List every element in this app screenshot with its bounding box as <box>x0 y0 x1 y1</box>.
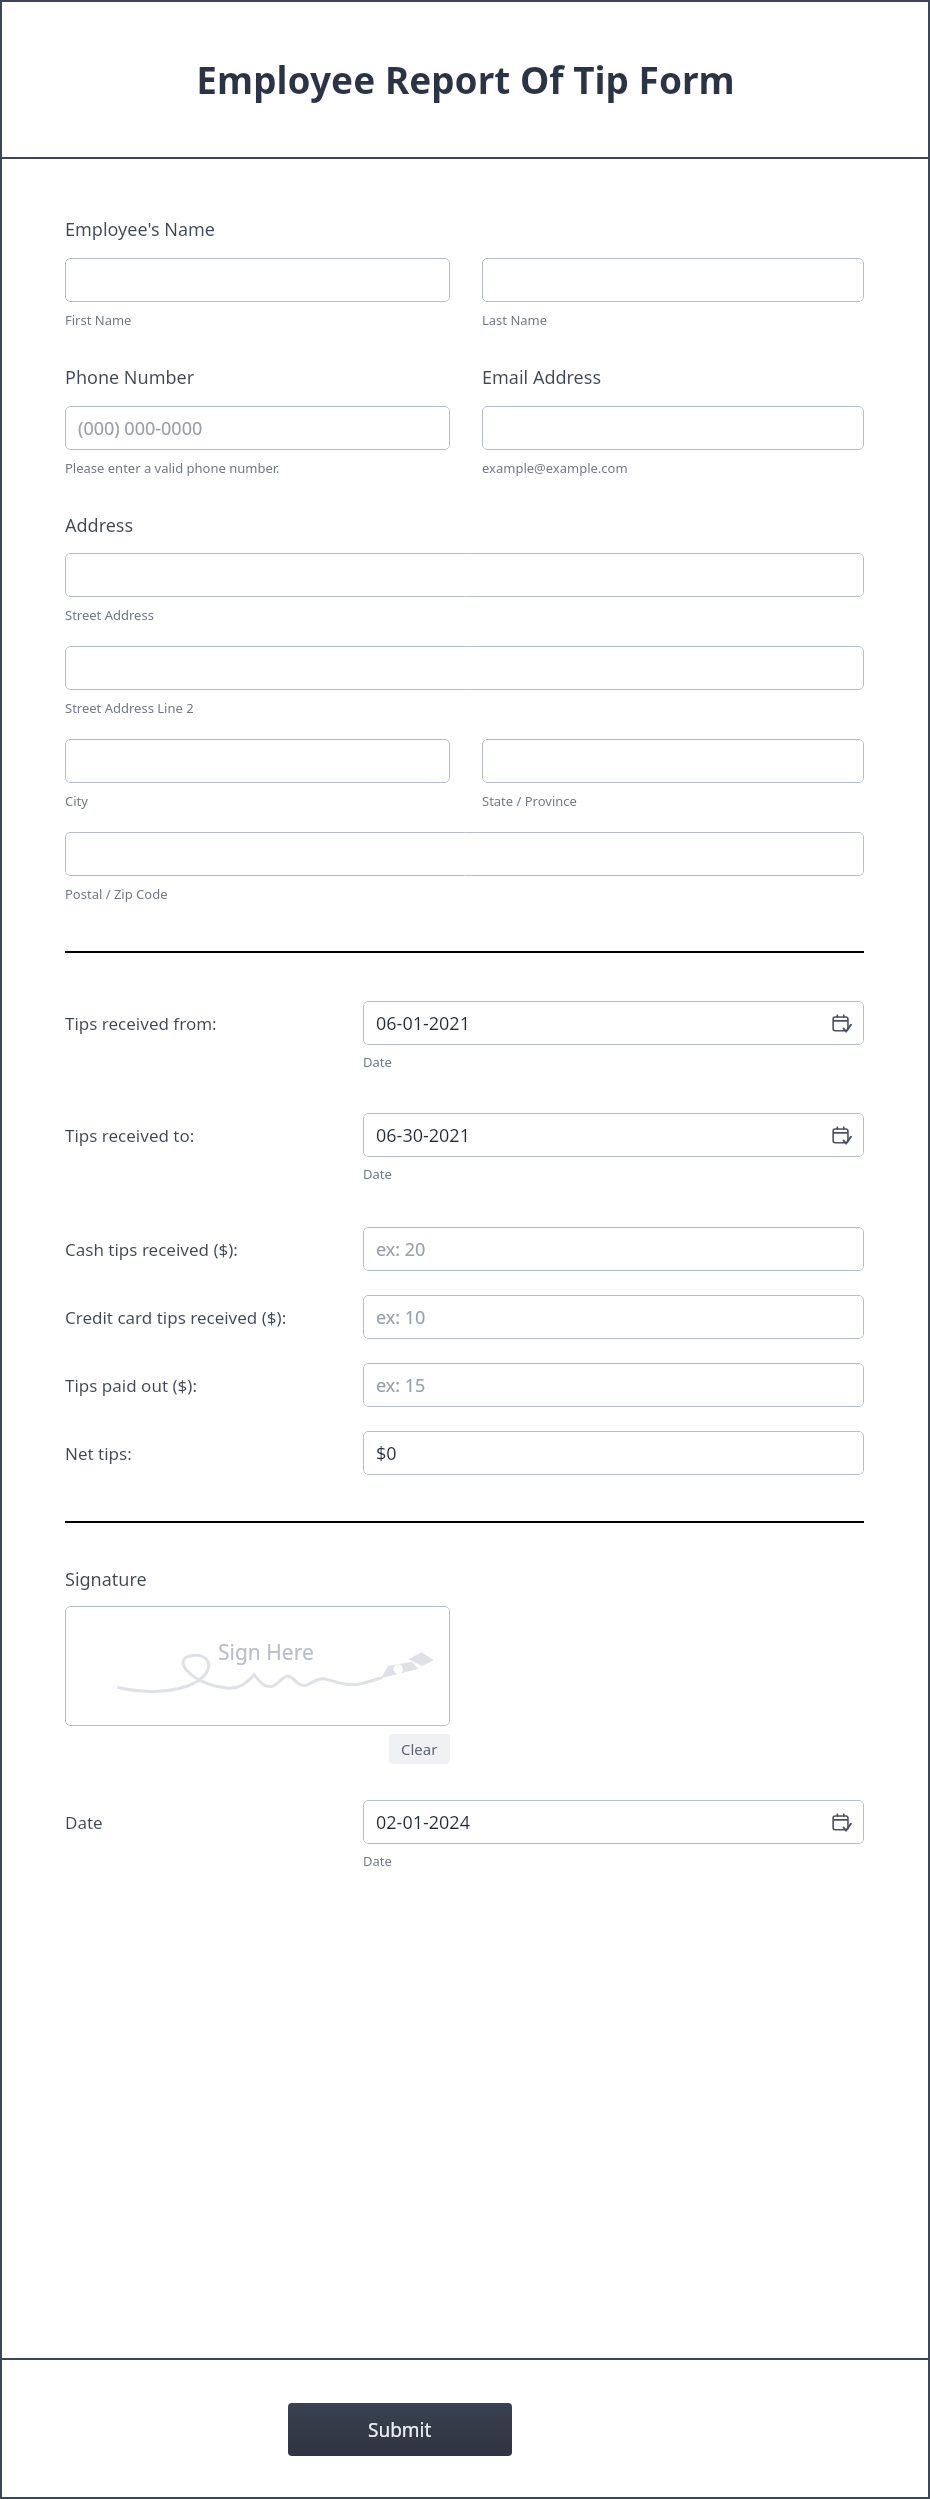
staticText: Employee Report Of Tip Form <box>196 54 735 104</box>
staticText: Submit <box>368 2417 432 2443</box>
button[interactable]: Submit <box>288 2403 512 2456</box>
button[interactable]: $0 <box>363 1431 864 1475</box>
staticText: Street Address Line 2 <box>65 699 194 717</box>
button[interactable] <box>65 553 864 597</box>
staticText: Tips paid out ($): <box>65 1374 197 1397</box>
staticText: $0 <box>376 1441 397 1466</box>
button[interactable] <box>65 832 864 876</box>
staticText: 06-01-2021 <box>376 1011 470 1036</box>
button[interactable]: 06-01-2021 <box>363 1001 864 1045</box>
button[interactable]: ex: 10 <box>363 1295 864 1339</box>
staticText: Address <box>65 513 134 538</box>
button[interactable]: Sign here <box>65 1606 450 1726</box>
button[interactable] <box>482 406 864 450</box>
staticText: Tips received to: <box>65 1124 195 1147</box>
staticText: Phone Number <box>65 365 195 390</box>
staticText: Postal / Zip Code <box>65 885 168 903</box>
staticText: example@example.com <box>482 459 628 477</box>
staticText: ex: 15 <box>376 1373 426 1398</box>
staticText: Date <box>363 1053 392 1071</box>
staticText: City <box>65 792 88 810</box>
staticText: State / Province <box>482 792 577 810</box>
staticText: Net tips: <box>65 1442 132 1465</box>
staticText: (000) 000-0000 <box>78 416 203 441</box>
staticText: Street Address <box>65 606 154 624</box>
staticText: Date <box>363 1852 392 1870</box>
staticText: Sign Here <box>218 1638 314 1667</box>
staticText: Employee's Name <box>65 217 215 242</box>
button[interactable]: ex: 15 <box>363 1363 864 1407</box>
button[interactable]: 06-30-2021 <box>363 1113 864 1157</box>
staticText: Date <box>65 1811 103 1834</box>
staticText: Email Address <box>482 365 602 390</box>
staticText: First Name <box>65 311 132 329</box>
staticText: 02-01-2024 <box>376 1810 470 1835</box>
button[interactable] <box>482 258 864 302</box>
button[interactable] <box>65 646 864 690</box>
button[interactable]: (000) 000-0000 <box>65 406 450 450</box>
button[interactable]: 02-01-2024 <box>363 1800 864 1844</box>
staticText: Credit card tips received ($): <box>65 1306 287 1329</box>
other: Choose date <box>832 1126 851 1145</box>
button[interactable]: ex: 20 <box>363 1227 864 1271</box>
staticText: Clear <box>401 1739 438 1759</box>
button[interactable]: Clear <box>389 1734 450 1764</box>
button[interactable] <box>482 739 864 783</box>
other: Choose date <box>832 1813 851 1832</box>
other: Choose date <box>832 1014 851 1033</box>
staticText: ex: 10 <box>376 1305 426 1330</box>
staticText: ex: 20 <box>376 1237 426 1262</box>
staticText: Signature <box>65 1567 147 1592</box>
button[interactable] <box>65 258 450 302</box>
staticText: Tips received from: <box>65 1012 217 1035</box>
staticText: 06-30-2021 <box>376 1123 470 1148</box>
staticText: Please enter a valid phone number. <box>65 459 280 477</box>
staticText: Cash tips received ($): <box>65 1238 238 1261</box>
staticText: Last Name <box>482 311 548 329</box>
button[interactable] <box>65 739 450 783</box>
staticText: Date <box>363 1165 392 1183</box>
